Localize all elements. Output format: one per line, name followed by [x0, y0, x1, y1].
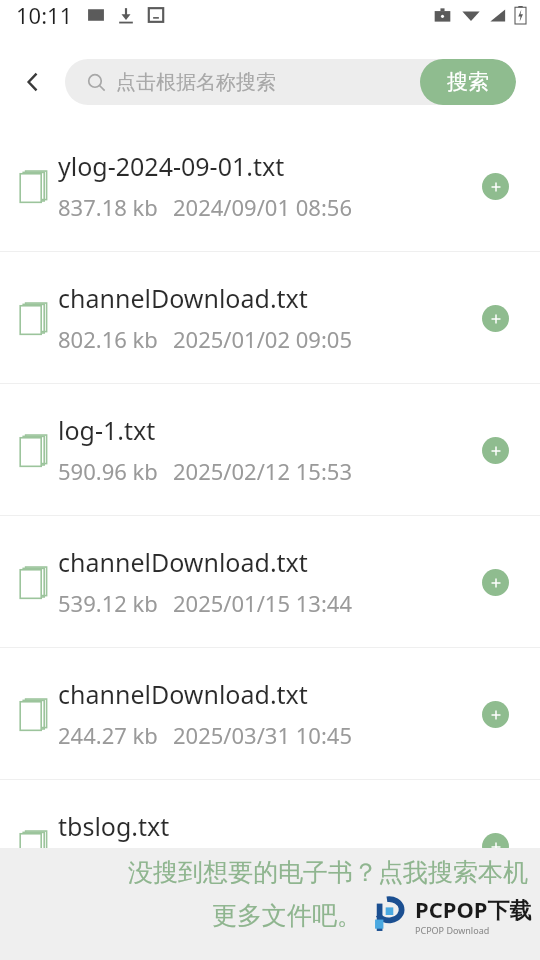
button[interactable]: 没搜到想要的电子书？点我搜索本机 [0, 848, 540, 960]
button[interactable]: Add [469, 292, 521, 344]
button[interactable]: Add [469, 424, 521, 476]
staticText: 802.16 kb [58, 324, 158, 354]
staticText: 2025/01/15 13:44 [173, 588, 352, 618]
staticText: channelDownload.txt [58, 281, 308, 315]
button[interactable]: log-1.txt [0, 384, 540, 515]
button[interactable]: 搜索 [420, 59, 516, 105]
staticText: PCPOP Download [415, 924, 490, 936]
staticText: 2024/09/01 08:56 [173, 192, 352, 222]
staticText: 点击根据名称搜索 [116, 70, 276, 95]
staticText: 244.27 kb [58, 720, 158, 750]
button[interactable]: Add [469, 688, 521, 740]
staticText: log-1.txt [58, 413, 156, 447]
staticText: ylog-2024-09-01.txt [58, 149, 285, 183]
staticText: 120.00 kb [58, 852, 158, 882]
staticText: 更多文件吧。 [212, 900, 362, 931]
button[interactable]: Add [469, 820, 521, 872]
staticText: 837.18 kb [58, 192, 158, 222]
staticText: channelDownload.txt [58, 677, 308, 711]
staticText: PCPOP下载 [415, 894, 532, 924]
button[interactable]: channelDownload.txt [0, 648, 540, 779]
button[interactable]: Add [469, 556, 521, 608]
staticText: 2025/01/02 09:05 [173, 324, 352, 354]
button[interactable]: Back [0, 44, 65, 120]
button[interactable]: Add [469, 160, 521, 212]
button[interactable]: tbslog.txt [0, 780, 540, 911]
button[interactable]: ylog-2024-09-01.txt [0, 120, 540, 251]
staticText: 2025/04/02 11:20 [173, 852, 352, 882]
button[interactable]: channelDownload.txt [0, 252, 540, 383]
button[interactable]: channelDownload.txt [0, 516, 540, 647]
staticText: 2025/03/31 10:45 [173, 720, 352, 750]
staticText: 539.12 kb [58, 588, 158, 618]
staticText: channelDownload.txt [58, 545, 308, 579]
staticText: 2025/02/12 15:53 [173, 456, 352, 486]
staticText: 590.96 kb [58, 456, 158, 486]
staticText: 10:11 [16, 0, 73, 30]
staticText: tbslog.txt [58, 809, 170, 843]
staticText: 搜索 [447, 69, 489, 95]
staticText: 没搜到想要的电子书？点我搜索本机 [128, 857, 528, 888]
